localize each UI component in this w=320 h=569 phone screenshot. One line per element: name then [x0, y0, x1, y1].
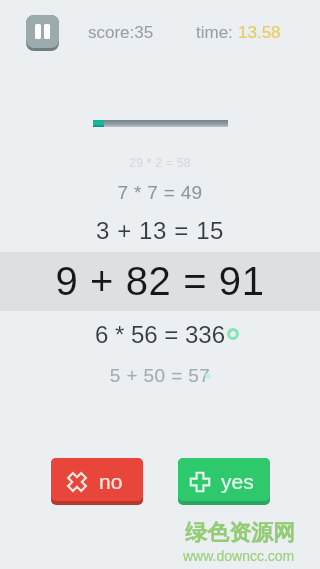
staticText: 3 + 13 = 15 — [0, 217, 320, 244]
button[interactable]: yes — [178, 458, 270, 505]
staticText: 5 + 50 = 57 — [0, 365, 320, 386]
staticText: 绿色资源网 — [185, 519, 295, 547]
staticText: time: — [196, 23, 238, 42]
staticText: yes — [221, 470, 254, 493]
staticText: 7 * 7 = 49 — [0, 182, 320, 203]
staticText: 6 * 56 = 336 — [0, 321, 320, 348]
button[interactable]: Pause — [26, 15, 59, 51]
staticText: score:35 — [88, 23, 154, 42]
button[interactable]: no — [51, 458, 143, 505]
staticText: 13.58 — [238, 23, 281, 42]
staticText: 9 + 82 = 91 — [0, 259, 320, 304]
staticText: 29 * 2 = 58 — [0, 156, 320, 169]
staticText: no — [99, 470, 123, 493]
staticText: www.downcc.com — [183, 548, 295, 564]
